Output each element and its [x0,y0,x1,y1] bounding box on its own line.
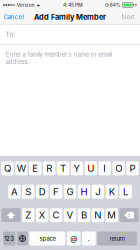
staticText: F [53,186,59,197]
button[interactable]: T [57,161,69,175]
button[interactable]: C [50,208,62,222]
staticText: O [115,162,122,174]
button[interactable]: M [105,208,118,222]
button[interactable]: Shift [1,208,21,222]
staticText: Y [73,162,80,174]
staticText: P [130,162,136,174]
staticText: 123 [4,235,14,242]
button[interactable]: I [98,161,111,175]
staticText: Q [4,162,11,174]
button[interactable]: Cancel [0,10,26,24]
button[interactable]: H [78,185,90,199]
button[interactable]: R [43,161,55,175]
button[interactable]: Y [71,161,83,175]
staticText: X [39,209,46,221]
staticText: I [103,162,106,174]
button[interactable]: space [29,231,65,245]
staticText: 4:45 PM [63,2,83,8]
button[interactable]: E [29,161,41,175]
button[interactable]: U [85,161,97,175]
staticText: x [127,212,130,218]
button[interactable]: 123 [3,231,15,245]
button[interactable]: Next [120,10,140,24]
button[interactable]: P [126,161,139,175]
button[interactable]: A [8,185,21,199]
button[interactable]: return [97,231,137,245]
staticText: @ [70,234,77,243]
staticText: B [81,209,87,221]
staticText: W [17,162,26,174]
button[interactable]: W [15,161,27,175]
staticText: Enter a family member's name or email ad… [6,51,112,65]
button[interactable]: K [105,185,118,199]
button[interactable]: Q [1,161,14,175]
staticText: K [109,186,115,197]
button[interactable]: J [92,185,104,199]
button[interactable]: D [36,185,48,199]
button[interactable]: @ [67,231,80,245]
staticText: Z [25,209,31,221]
button[interactable]: V [64,208,76,222]
staticText: C [53,209,60,221]
button[interactable]: Delete [119,208,139,222]
staticText: G [66,186,73,197]
staticText: L [123,186,128,197]
staticText: 84% [110,2,121,8]
staticText: To: [6,31,16,38]
staticText: S [25,186,31,197]
staticText: return [109,235,124,242]
staticText: R [46,162,52,174]
button[interactable]: G [64,185,76,199]
button[interactable]: N [92,208,104,222]
button[interactable]: Next keyboard [17,231,28,245]
staticText: Add Family Member [34,12,106,21]
button[interactable]: L [119,185,132,199]
staticText: D [39,186,46,197]
staticText: V [66,209,73,221]
button[interactable]: Z [22,208,34,222]
button[interactable]: O [112,161,125,175]
button[interactable]: . [82,231,96,245]
button[interactable]: S [22,185,34,199]
staticText: A [11,186,18,197]
staticText: J [95,186,100,197]
staticText: . [88,234,90,243]
button[interactable]: B [78,208,90,222]
staticText: H [80,186,87,197]
staticText: M [107,209,116,221]
staticText: T [60,162,66,174]
button[interactable]: X [36,208,48,222]
staticText: Verizon [17,2,35,8]
staticText: N [94,209,101,221]
staticText: space [39,235,55,242]
staticText: E [32,162,38,174]
staticText: Next [122,13,135,21]
staticText: U [87,162,94,174]
button[interactable]: F [50,185,62,199]
staticText: Cancel [4,13,24,21]
